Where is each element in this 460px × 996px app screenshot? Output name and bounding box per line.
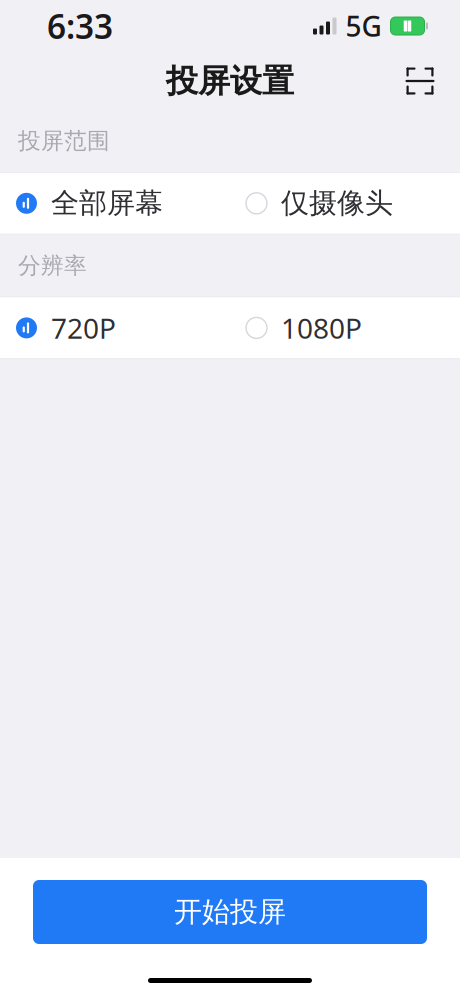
staticText: 开始投屏	[174, 895, 286, 929]
staticText: 投屏范围	[18, 127, 110, 155]
staticText: 仅摄像头	[281, 186, 393, 220]
staticText: 全部屏幕	[51, 186, 163, 220]
button[interactable]: 1080P	[230, 297, 460, 358]
staticText: 1080P	[281, 309, 362, 346]
button[interactable]: 仅摄像头	[230, 173, 460, 234]
staticText: 720P	[51, 309, 116, 346]
staticText: 6:33	[47, 4, 113, 48]
staticText: 分辨率	[18, 252, 87, 279]
button[interactable]: 720P	[0, 297, 230, 358]
button[interactable]: 全部屏幕	[0, 173, 230, 234]
staticText: 5G	[345, 7, 381, 45]
button[interactable]: 扫一扫	[394, 55, 446, 107]
staticText: 投屏设置	[166, 61, 294, 101]
button[interactable]: 开始投屏	[33, 880, 427, 944]
